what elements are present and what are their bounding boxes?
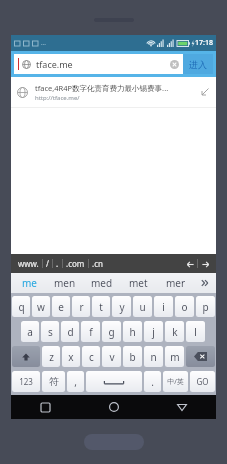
button[interactable]: q [12, 296, 30, 317]
button[interactable]: i [154, 296, 173, 317]
staticText: q [18, 300, 25, 314]
button[interactable]: me [11, 273, 47, 293]
staticText: w [37, 300, 45, 314]
staticText: men [54, 276, 76, 290]
button[interactable]: met [120, 273, 157, 293]
button[interactable]: c [82, 346, 100, 367]
button[interactable]: y [112, 296, 131, 317]
staticText: a [27, 325, 33, 339]
button[interactable]: / [43, 258, 52, 269]
staticText: k [172, 325, 178, 339]
staticText: http://tface.me/ [35, 94, 80, 102]
button[interactable]: b [123, 346, 142, 367]
staticText: GO [196, 376, 209, 387]
staticText: ... [41, 39, 46, 47]
button[interactable]: Back [148, 395, 216, 419]
button[interactable]: GO [190, 371, 215, 392]
button[interactable]: t [92, 296, 110, 317]
button[interactable]: 符 [42, 371, 65, 392]
button[interactable]: w [32, 296, 50, 317]
button[interactable]: d [61, 321, 79, 342]
button[interactable]: o [175, 296, 194, 317]
staticText: med [91, 276, 113, 290]
button[interactable]: , [67, 371, 84, 392]
button[interactable]: .cn [89, 258, 106, 269]
staticText: h [129, 325, 136, 339]
staticText: . [151, 375, 154, 389]
button[interactable]: 中/英 [163, 371, 188, 392]
button[interactable]: v [102, 346, 121, 367]
staticText: x [68, 350, 74, 364]
button[interactable]: med [83, 273, 120, 293]
button[interactable]: Insert [200, 87, 210, 97]
staticText: www. [18, 258, 39, 269]
button[interactable]: Home [80, 395, 148, 419]
staticText: e [58, 300, 64, 314]
staticText: s [48, 325, 53, 339]
button[interactable]: Next [198, 257, 212, 271]
staticText: / [46, 258, 49, 269]
staticText: .cn [92, 258, 103, 269]
staticText: g [108, 325, 115, 339]
staticText: j [152, 325, 155, 339]
staticText: .com [66, 258, 85, 269]
button[interactable]: p [196, 296, 215, 317]
button[interactable]: a [21, 321, 39, 342]
button[interactable]: . [53, 258, 62, 269]
staticText: u [139, 300, 146, 314]
staticText: o [181, 300, 188, 314]
button[interactable]: tface.me [14, 54, 183, 74]
staticText: t [99, 300, 103, 314]
staticText: l [194, 325, 197, 339]
button[interactable]: men [47, 273, 83, 293]
button[interactable]: . [144, 371, 161, 392]
staticText: n [150, 350, 157, 364]
button[interactable]: e [52, 296, 70, 317]
button[interactable]: .com [63, 258, 88, 269]
button[interactable]: g [102, 321, 121, 342]
staticText: 符 [49, 375, 59, 388]
staticText: m [170, 350, 180, 364]
button[interactable]: f [81, 321, 100, 342]
staticText: f [89, 325, 93, 339]
button[interactable]: x [62, 346, 80, 367]
staticText: r [79, 300, 84, 314]
button[interactable]: tface,4R4P数字化责育费力最小锡费事... [11, 77, 216, 107]
staticText: 123 [19, 376, 33, 387]
button[interactable]: Space [86, 371, 142, 392]
button[interactable]: u [133, 296, 152, 317]
staticText: p [202, 300, 209, 314]
staticText: 中/英 [167, 377, 184, 387]
button[interactable]: s [41, 321, 59, 342]
staticText: met [129, 276, 148, 290]
button[interactable]: 123 [12, 371, 40, 392]
button[interactable]: m [165, 346, 184, 367]
button[interactable]: Shift [12, 346, 40, 367]
staticText: 17:18 [195, 38, 213, 48]
button[interactable]: j [144, 321, 163, 342]
button[interactable]: r [72, 296, 90, 317]
staticText: b [129, 350, 136, 364]
staticText: d [67, 325, 74, 339]
staticText: y [119, 300, 125, 314]
button[interactable]: Backspace [186, 346, 215, 367]
button[interactable]: mer [157, 273, 194, 293]
staticText: i [162, 300, 165, 314]
button[interactable]: l [186, 321, 205, 342]
button[interactable]: Previous [183, 257, 197, 271]
button[interactable]: n [144, 346, 163, 367]
staticText: tface.me [36, 58, 73, 70]
button[interactable]: h [123, 321, 142, 342]
button[interactable]: More suggestions [194, 273, 216, 293]
button[interactable]: z [42, 346, 60, 367]
button[interactable]: 进入 [183, 54, 213, 74]
button[interactable]: Clear [170, 60, 179, 69]
staticText: v [109, 350, 115, 364]
staticText: . [56, 258, 59, 269]
button[interactable]: k [165, 321, 184, 342]
staticText: mer [166, 276, 186, 290]
button[interactable]: Recent apps [11, 395, 80, 419]
staticText: , [74, 375, 77, 389]
button[interactable]: www. [15, 258, 42, 269]
staticText: z [49, 350, 54, 364]
